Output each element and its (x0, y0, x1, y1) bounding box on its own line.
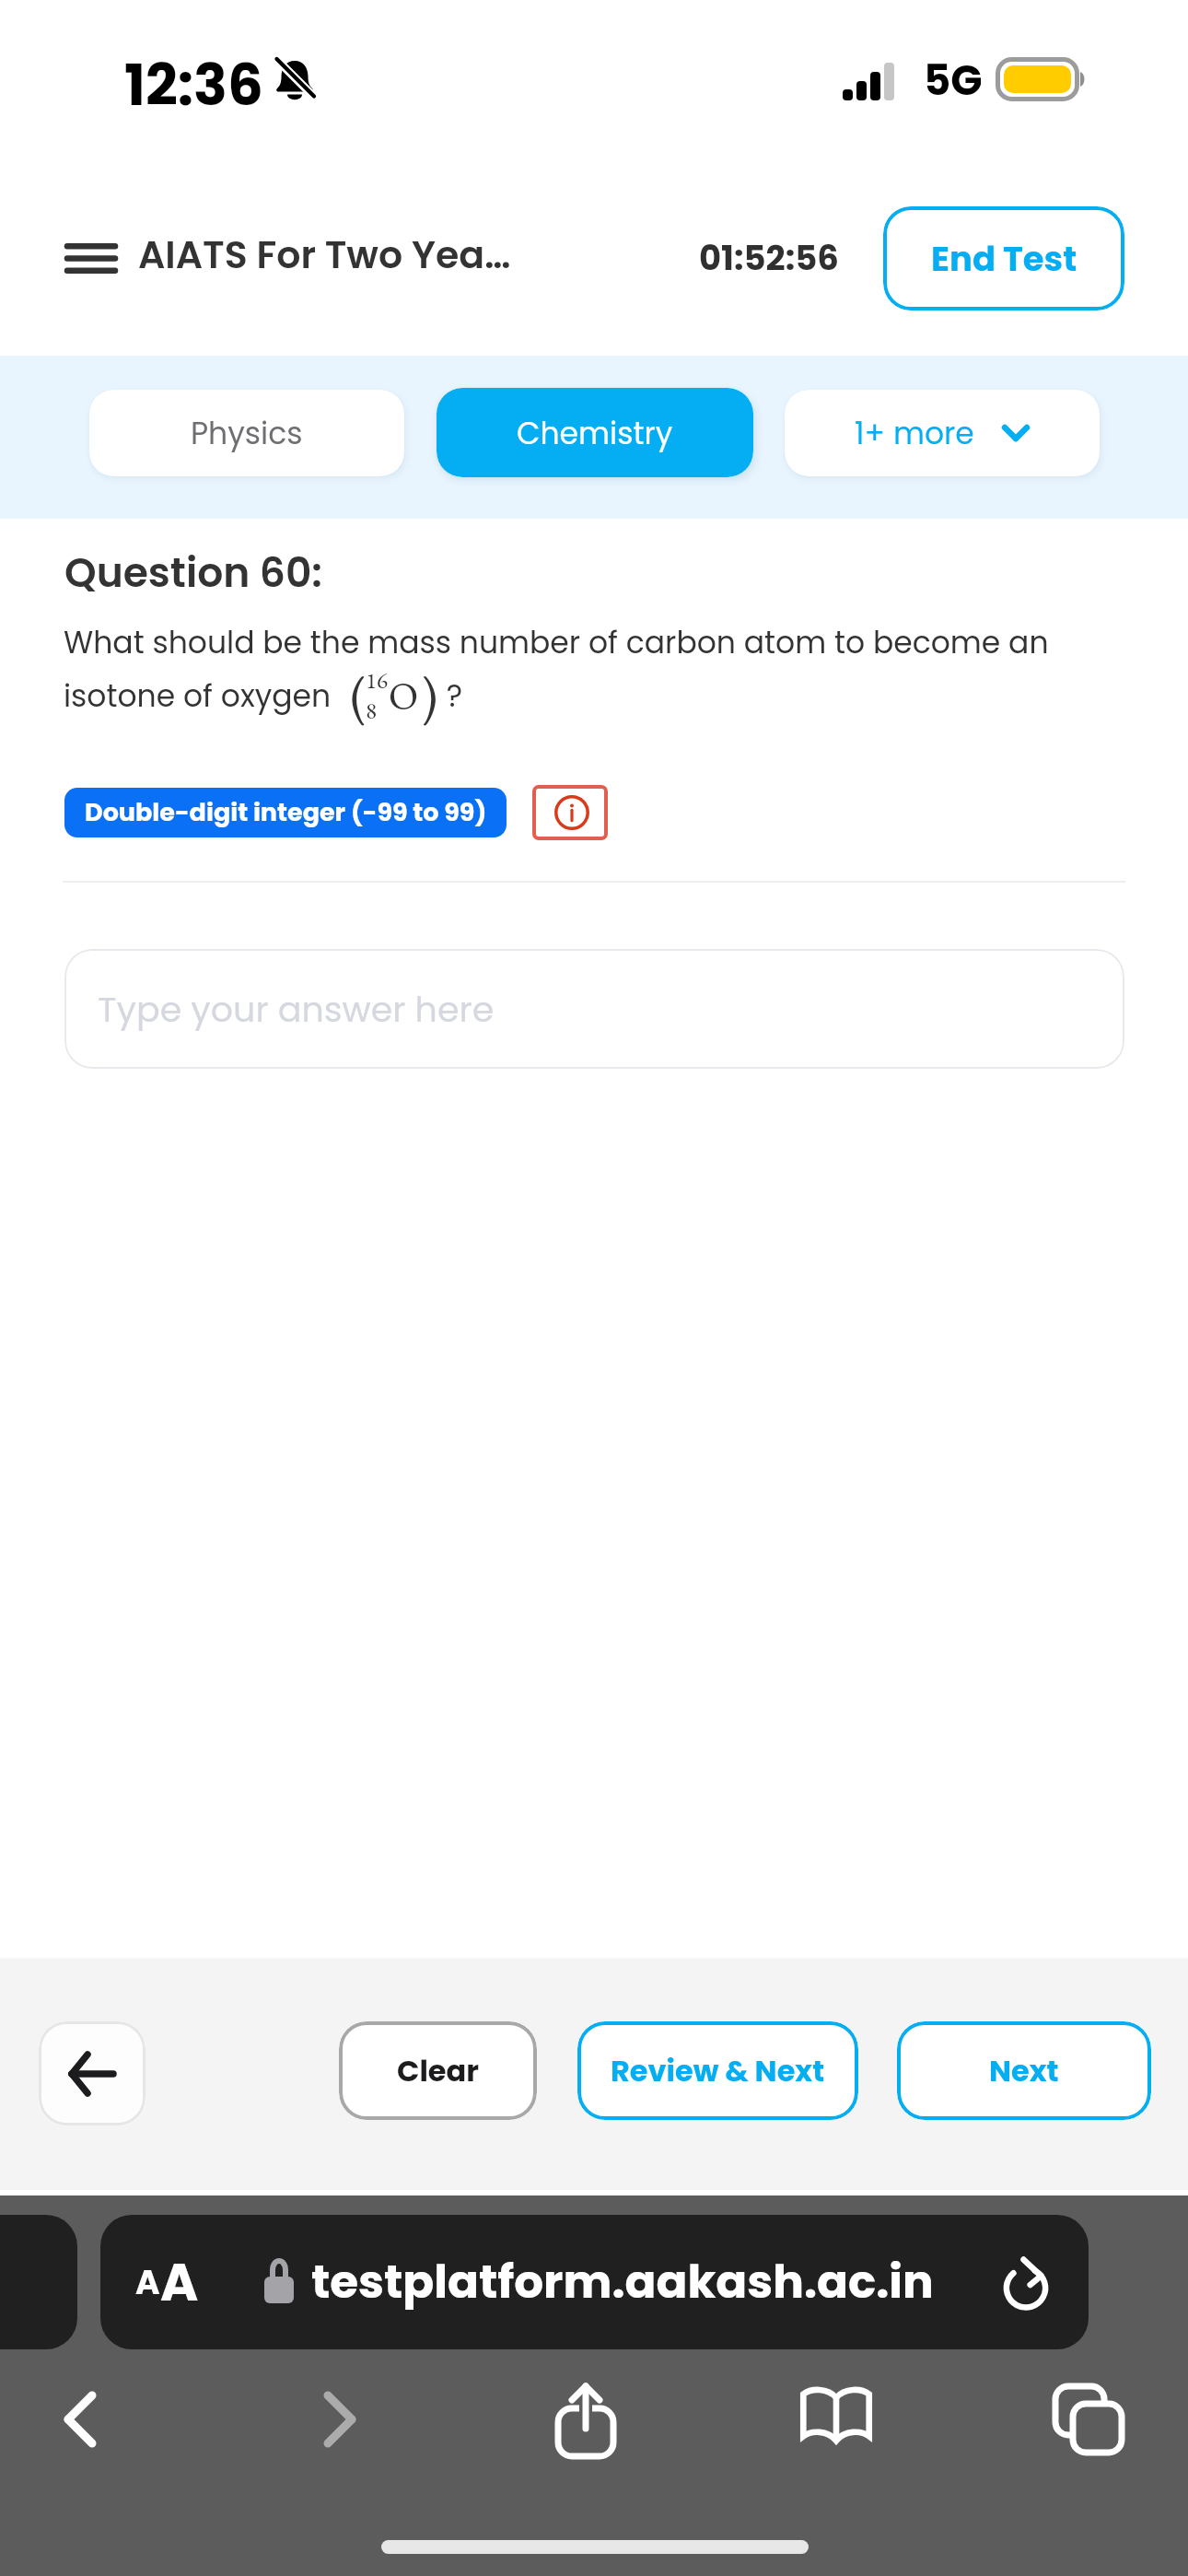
staticText: 01:52:56 (699, 234, 839, 282)
staticText: isotone of oxygen (64, 674, 339, 717)
button[interactable]: Review & Next (577, 2021, 858, 2120)
staticText: AIATS For Two Yea… (138, 228, 511, 281)
button[interactable]: Type your answer here (64, 949, 1124, 1069)
staticText: Next (989, 2050, 1059, 2091)
button[interactable]: Back (39, 2021, 146, 2125)
button[interactable]: Share (549, 2383, 623, 2456)
staticText: Type your answer here (98, 985, 495, 1034)
staticText: Review & Next (611, 2050, 825, 2091)
button[interactable]: Bookmarks (799, 2383, 873, 2456)
staticText: ) (421, 661, 438, 731)
button[interactable]: Information (532, 785, 608, 840)
staticText: 5G (924, 52, 983, 110)
button[interactable]: Next (897, 2021, 1151, 2120)
staticText: ( (350, 661, 367, 731)
button[interactable]: 1+ more (785, 390, 1100, 476)
button[interactable]: Tabs (1052, 2383, 1125, 2456)
button[interactable]: Forward (303, 2383, 377, 2456)
staticText: Chemistry (517, 412, 673, 454)
staticText: 1+ more (855, 412, 974, 454)
staticText: 12:36 (124, 46, 263, 124)
button[interactable]: Chemistry (437, 388, 753, 477)
staticText: End Test (931, 235, 1077, 283)
button[interactable]: Physics (89, 390, 404, 476)
staticText: Question 60: (64, 544, 322, 602)
button[interactable]: Back (43, 2383, 117, 2456)
staticText: A (135, 2259, 160, 2305)
staticText: Clear (397, 2050, 479, 2091)
staticText: testplatform.aakash.ac.in (311, 2250, 934, 2314)
staticText: Physics (191, 412, 303, 454)
staticText: 8 (366, 696, 378, 726)
button[interactable]: A (100, 2215, 1089, 2349)
staticText: ? (438, 674, 463, 717)
button[interactable]: Double-digit integer (-99 to 99) (64, 788, 507, 837)
button[interactable]: Menu (51, 217, 132, 299)
button[interactable]: Reload (991, 2247, 1061, 2317)
staticText: A (160, 2246, 199, 2318)
staticText: Double-digit integer (-99 to 99) (85, 795, 487, 830)
staticText: 16 (366, 665, 389, 696)
button[interactable]: Clear (339, 2021, 537, 2120)
button[interactable]: End Test (883, 206, 1124, 310)
staticText: What should be the mass number of carbon… (64, 621, 1049, 663)
staticText: O (389, 671, 419, 721)
